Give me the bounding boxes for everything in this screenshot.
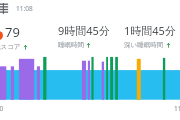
button[interactable]: Sleep <box>0 0 180 17</box>
staticText: 眠スコア <box>0 43 21 51</box>
staticText: 11: <box>174 104 180 113</box>
staticText: :10 <box>0 104 4 113</box>
staticText: 深い睡眠時間 <box>124 41 164 49</box>
button[interactable]: 79 <box>0 23 58 52</box>
staticText: 1時間45分 <box>124 23 176 38</box>
staticText: 9時間45分 <box>58 23 110 38</box>
staticText: 睡眠時間 <box>58 41 84 49</box>
other: Sleep <box>0 3 9 14</box>
staticText: 79 <box>5 23 20 41</box>
staticText: 11:08 <box>16 4 33 13</box>
button[interactable]: 1時間45分 <box>124 23 180 52</box>
button[interactable]: Sleep stages chart <box>0 56 180 103</box>
button[interactable]: 9時間45分 <box>58 23 124 52</box>
